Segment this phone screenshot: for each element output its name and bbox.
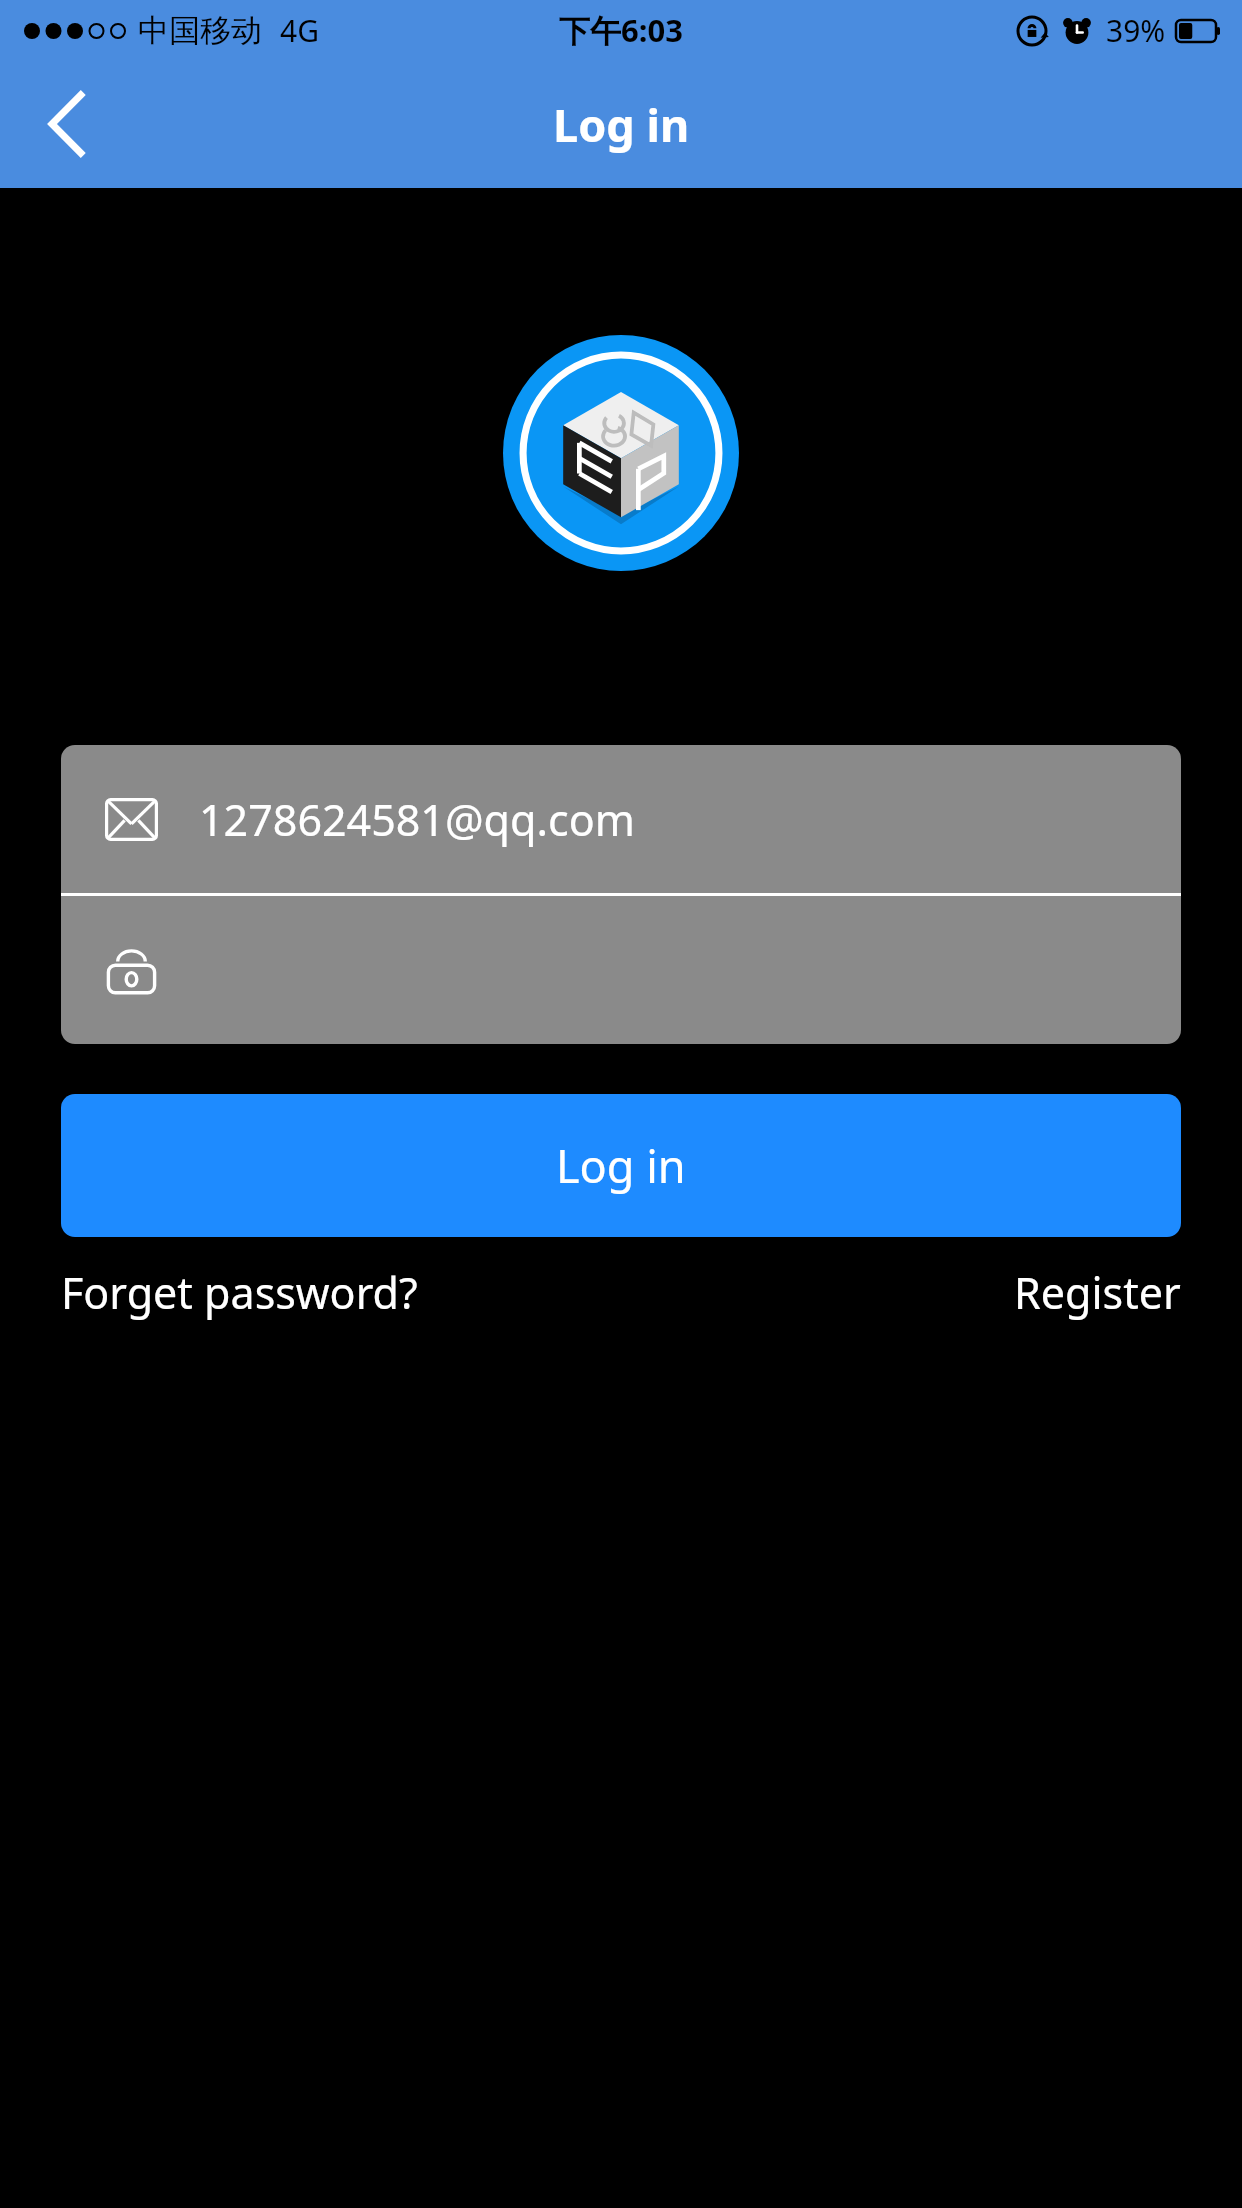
button[interactable]: Back	[22, 78, 114, 170]
staticText: Log in	[556, 1135, 686, 1196]
staticText: 4G	[280, 10, 319, 51]
staticText: Forget password?	[61, 1263, 418, 1322]
staticText: 1278624581@qq.com	[199, 790, 635, 849]
button[interactable]: Forget password?	[61, 1263, 418, 1322]
button[interactable]: Password	[61, 896, 1181, 1044]
staticText: 下午6:03	[559, 9, 683, 51]
button[interactable]: Register	[1014, 1263, 1181, 1322]
staticText: Log in	[553, 94, 690, 155]
other: Email	[105, 798, 158, 841]
staticText: 中国移动	[138, 11, 262, 50]
staticText: Register	[1014, 1263, 1181, 1322]
staticText: 39%	[1106, 10, 1166, 51]
button[interactable]: Email	[61, 745, 1181, 893]
other: Password	[105, 944, 158, 997]
button[interactable]: Log in	[61, 1094, 1181, 1237]
